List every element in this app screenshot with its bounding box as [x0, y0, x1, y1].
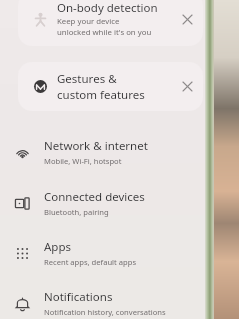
staticText: unlocked while it's on you — [57, 27, 152, 38]
staticText: Keep your device — [57, 16, 120, 27]
staticText: On-body detection — [57, 0, 158, 16]
button[interactable]: Apps — [0, 231, 206, 275]
button[interactable]: Dismiss suggestion — [175, 62, 199, 111]
staticText: Network & internet — [44, 138, 148, 154]
staticText: Apps — [44, 239, 72, 255]
staticText: Gestures & — [57, 71, 117, 87]
button[interactable]: Connected devices — [0, 181, 206, 225]
button[interactable]: Dismiss suggestion — [175, 0, 199, 46]
staticText: Notifications — [44, 289, 113, 305]
button[interactable]: On-body detection — [18, 0, 203, 46]
staticText: custom features — [57, 87, 145, 103]
button[interactable]: Notifications — [0, 281, 206, 319]
button[interactable]: Network & internet — [0, 130, 206, 174]
staticText: Mobile, Wi-Fi, hotspot — [44, 156, 122, 166]
staticText: Recent apps, default apps — [44, 257, 137, 267]
staticText: Connected devices — [44, 189, 145, 205]
button[interactable]: Gestures & — [18, 62, 203, 111]
staticText: Notification history, conversations — [44, 307, 166, 317]
staticText: Bluetooth, pairing — [44, 207, 109, 217]
